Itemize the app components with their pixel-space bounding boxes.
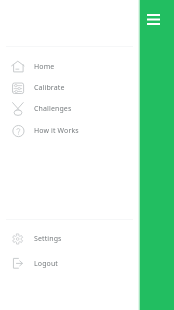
button[interactable]: Home xyxy=(0,56,138,77)
button[interactable]: How it Works xyxy=(0,120,138,141)
staticText: Challenges xyxy=(34,104,72,114)
button[interactable]: Calibrate xyxy=(0,77,138,98)
staticText: Logout xyxy=(34,259,59,269)
button[interactable]: Logout xyxy=(0,253,138,274)
staticText: Calibrate xyxy=(34,83,65,93)
staticText: Home xyxy=(34,62,55,72)
button[interactable]: Challenges xyxy=(0,98,138,119)
button[interactable]: Settings xyxy=(0,228,138,249)
staticText: How it Works xyxy=(34,126,79,136)
button[interactable]: Open navigation menu xyxy=(147,14,160,25)
staticText: Settings xyxy=(34,234,62,244)
